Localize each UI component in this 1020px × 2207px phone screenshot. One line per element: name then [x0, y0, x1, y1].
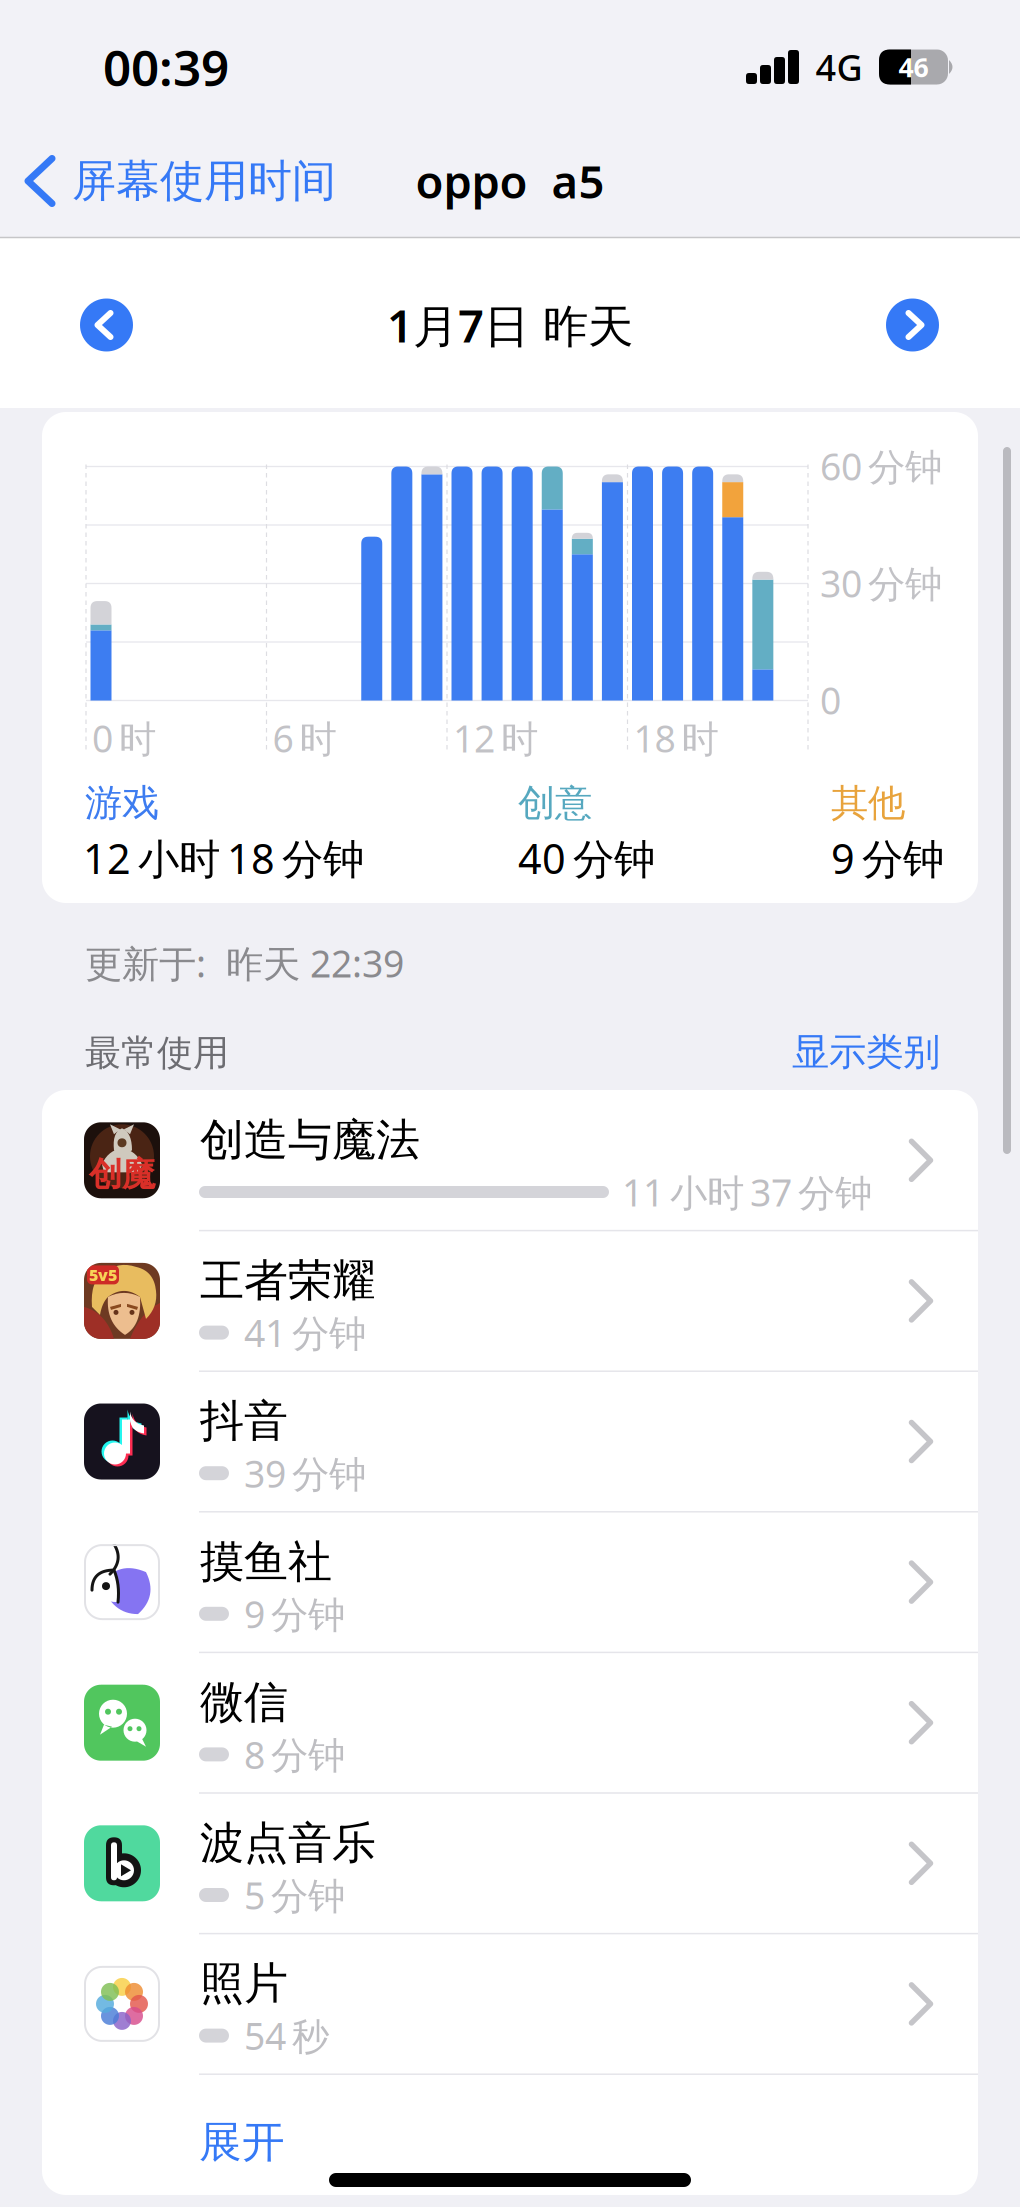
staticText: 更新于: 昨天 22:39: [85, 938, 404, 988]
staticText: 抖音: [200, 1394, 288, 1448]
button[interactable]: 返回 屏幕使用时间: [24, 149, 424, 213]
staticText: 12 时: [453, 713, 538, 763]
staticText: 1月7日 昨天: [387, 295, 633, 355]
staticText: 0: [820, 675, 841, 725]
staticText: 创魔: [89, 1154, 155, 1195]
button[interactable]: 微信: [42, 1652, 978, 1793]
staticText: 最常使用: [85, 1031, 229, 1075]
staticText: 18 时: [633, 713, 718, 763]
staticText: 微信: [200, 1675, 288, 1729]
button[interactable]: 波点音乐: [42, 1793, 978, 1934]
staticText: 46: [898, 49, 928, 85]
staticText: 12 小时 18 分钟: [83, 831, 364, 885]
staticText: 波点音乐: [200, 1816, 376, 1870]
staticText: 4G: [815, 43, 862, 91]
staticText: 屏幕使用时间: [72, 154, 336, 208]
staticText: 41 分钟: [244, 1308, 366, 1357]
staticText: 照片: [200, 1957, 288, 2011]
button[interactable]: 创魔: [42, 1090, 978, 1231]
staticText: 8 分钟: [244, 1730, 345, 1779]
button[interactable]: 抖音: [42, 1371, 978, 1512]
button[interactable]: 后一天: [886, 298, 939, 351]
staticText: oppo a5: [415, 151, 604, 211]
staticText: 0 时: [92, 713, 156, 763]
staticText: 创造与魔法: [200, 1113, 420, 1167]
staticText: 54 秒: [244, 2011, 329, 2060]
button[interactable]: 显示类别: [792, 1029, 940, 1075]
staticText: 9 分钟: [831, 831, 944, 885]
staticText: 40 分钟: [518, 831, 655, 885]
staticText: 5 分钟: [244, 1870, 345, 1920]
staticText: 11 小时 37 分钟: [622, 1167, 872, 1217]
button[interactable]: 展开: [42, 2074, 978, 2192]
button[interactable]: 5v5: [42, 1231, 978, 1371]
staticText: 60 分钟: [820, 441, 942, 491]
staticText: 显示类别: [792, 1029, 940, 1075]
button[interactable]: 照片: [42, 1934, 978, 2074]
staticText: 创意: [518, 780, 592, 826]
staticText: 王者荣耀: [200, 1254, 376, 1308]
button[interactable]: 摸鱼社: [42, 1512, 978, 1652]
staticText: 9 分钟: [244, 1589, 345, 1639]
staticText: 6 时: [272, 713, 336, 763]
staticText: 30 分钟: [820, 558, 942, 608]
staticText: 摸鱼社: [200, 1535, 332, 1589]
button[interactable]: 前一天: [80, 298, 133, 351]
staticText: 游戏: [85, 780, 159, 826]
staticText: 39 分钟: [244, 1448, 366, 1498]
staticText: 展开: [199, 2116, 285, 2168]
staticText: 5v5: [89, 1264, 117, 1285]
staticText: 00:39: [103, 34, 229, 100]
staticText: 其他: [831, 780, 905, 826]
